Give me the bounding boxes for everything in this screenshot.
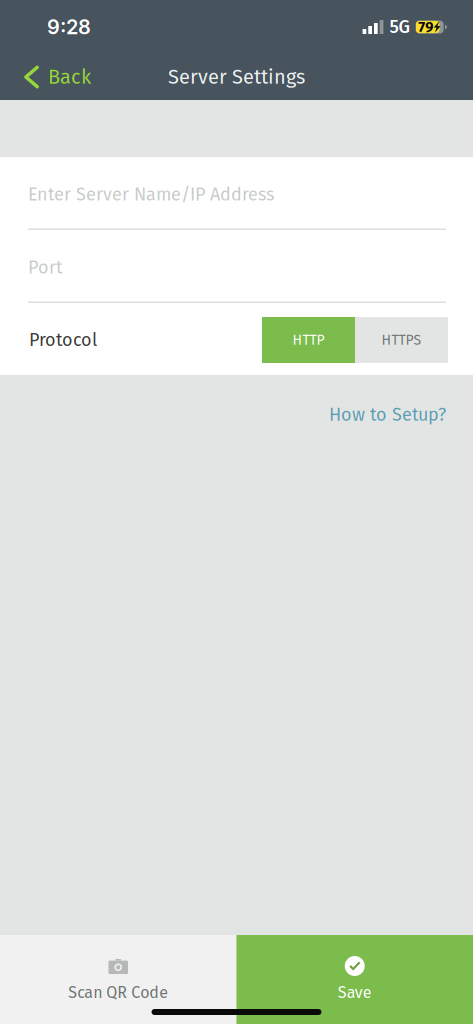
staticText: HTTPS [381, 332, 421, 348]
staticText: Scan QR Code [68, 983, 168, 1002]
button[interactable]: Back [0, 53, 103, 101]
staticText: 5G [390, 16, 410, 38]
staticText: How to Setup? [329, 404, 446, 426]
staticText: 9:28 [47, 15, 91, 39]
button[interactable]: HTTPS [355, 317, 448, 363]
staticText: Save [338, 983, 372, 1002]
staticText: Back [48, 65, 91, 89]
button[interactable]: How to Setup? [329, 393, 473, 437]
staticText: Enter Server Name/IP Address [28, 184, 274, 205]
staticText: Server Settings [168, 65, 305, 89]
button[interactable]: HTTP [262, 317, 355, 363]
staticText: Port [28, 257, 62, 278]
staticText: HTTP [292, 332, 324, 348]
button[interactable]: Save [236, 935, 473, 1024]
button[interactable]: Scan QR Code [0, 935, 236, 1024]
staticText: Protocol [29, 329, 97, 351]
staticText: 79 [418, 18, 433, 36]
